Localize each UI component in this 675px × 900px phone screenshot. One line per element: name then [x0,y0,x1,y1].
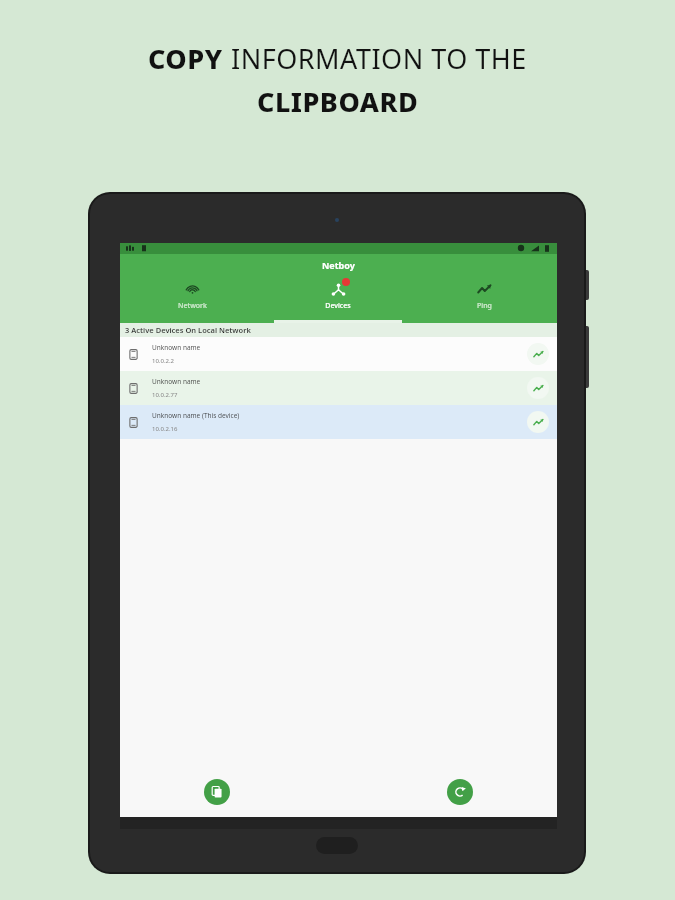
button[interactable]: Copy to clipboard [204,779,230,805]
button[interactable]: Refresh [447,779,473,805]
button[interactable]: Ping device [527,343,549,365]
staticText: 10.0.2.77 [152,391,178,399]
button[interactable]: Ping device [527,377,549,399]
button[interactable]: Ping [411,276,557,323]
staticText: Ping [477,301,492,311]
staticText: CLIPBOARD [257,83,419,120]
staticText: 10.0.2.2 [152,357,174,365]
staticText: INFORMATION TO THE [231,40,527,77]
button[interactable]: Network [120,276,265,323]
staticText: COPY [148,40,231,77]
button[interactable]: Unknown name [120,337,557,371]
button[interactable]: Ping device [527,411,549,433]
staticText: Unknown name (This device) [152,411,240,420]
staticText: 10.0.2.16 [152,425,178,433]
button[interactable]: Unknown name [120,371,557,405]
staticText: Unknown name [152,377,201,386]
staticText: Netboy [322,259,355,271]
button[interactable]: Devices [265,276,411,323]
button[interactable]: Unknown name (This device) [120,405,557,439]
staticText: Network [178,301,207,311]
staticText: Unknown name [152,343,201,352]
staticText: 3 Active Devices On Local Network [125,325,251,335]
staticText: Devices [325,301,351,311]
